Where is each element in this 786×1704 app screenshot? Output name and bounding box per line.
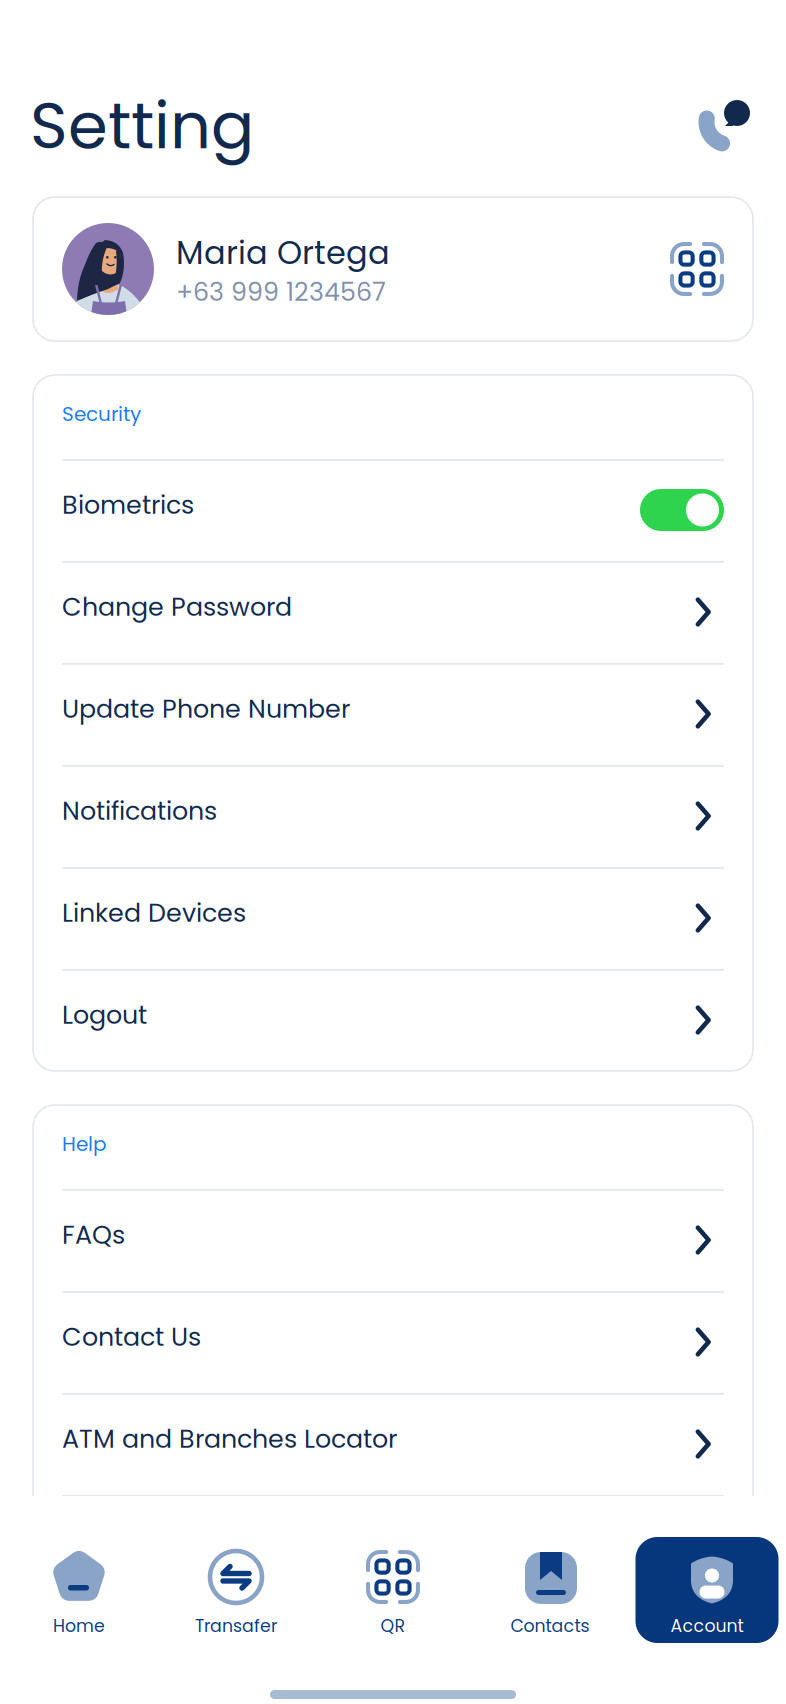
staticText: +63 999 1234567 bbox=[176, 274, 386, 310]
staticText: Linked Devices bbox=[62, 895, 246, 931]
button[interactable]: Contacts bbox=[471, 1530, 628, 1650]
button[interactable]: Transafer bbox=[157, 1530, 314, 1650]
staticText: Rates and Fees bbox=[62, 1523, 254, 1559]
staticText: Update Phone Number bbox=[62, 691, 350, 727]
staticText: Biometrics bbox=[62, 487, 194, 523]
button[interactable]: Update Phone Number bbox=[33, 663, 753, 765]
button[interactable]: Account bbox=[628, 1530, 785, 1650]
staticText: Contacts bbox=[510, 1614, 589, 1638]
button[interactable]: Rates and Fees bbox=[33, 1495, 753, 1597]
staticText: FAQs bbox=[62, 1217, 125, 1253]
button[interactable]: Notifications bbox=[33, 765, 753, 867]
staticText: Maria Ortega bbox=[176, 230, 390, 275]
staticText: Account bbox=[670, 1614, 743, 1638]
staticText: Help bbox=[62, 1130, 107, 1158]
button[interactable]: Logout bbox=[33, 969, 753, 1071]
staticText: Security bbox=[62, 400, 141, 428]
staticText: QR bbox=[380, 1614, 405, 1638]
button[interactable]: ATM and Branches Locator bbox=[33, 1393, 753, 1495]
button[interactable]: Home bbox=[0, 1530, 157, 1650]
staticText: Notifications bbox=[62, 793, 217, 829]
staticText: Logout bbox=[62, 997, 147, 1033]
staticText: Change Password bbox=[62, 589, 292, 625]
staticText: Transafer bbox=[195, 1614, 277, 1638]
button[interactable]: Change Password bbox=[33, 561, 753, 663]
button[interactable]: Linked Devices bbox=[33, 867, 753, 969]
button[interactable]: Contact support bbox=[683, 82, 745, 144]
button[interactable]: Contact Us bbox=[33, 1291, 753, 1393]
button[interactable]: FAQs bbox=[33, 1189, 753, 1291]
staticText: Home bbox=[53, 1614, 105, 1638]
staticText: Setting bbox=[30, 81, 254, 171]
button[interactable]: Scan QR code bbox=[670, 242, 724, 296]
button[interactable]: Biometrics bbox=[33, 459, 753, 561]
staticText: Contact Us bbox=[62, 1319, 201, 1355]
button[interactable]: QR bbox=[314, 1530, 471, 1650]
staticText: ATM and Branches Locator bbox=[62, 1421, 397, 1457]
